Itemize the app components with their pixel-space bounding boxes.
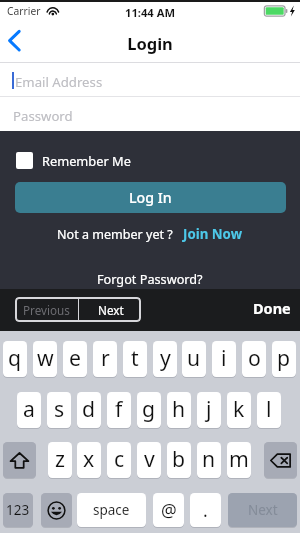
staticText: d	[82, 394, 96, 423]
button[interactable]: @	[153, 493, 184, 527]
staticText: 123	[6, 501, 30, 519]
staticText: Login	[0, 32, 300, 54]
button[interactable]: Password	[0, 97, 300, 130]
staticText: Join Now	[183, 225, 243, 243]
button[interactable]: z	[48, 442, 72, 478]
staticText: t	[131, 343, 139, 372]
staticText: e	[69, 343, 81, 372]
staticText: Not a member yet ?	[57, 226, 173, 243]
button[interactable]: e	[63, 341, 87, 377]
staticText: v	[144, 444, 155, 473]
button[interactable]: c	[107, 442, 131, 478]
button[interactable]: y	[153, 341, 177, 377]
button[interactable]: n	[197, 442, 221, 478]
staticText: o	[248, 343, 261, 372]
staticText: w	[37, 343, 54, 372]
staticText: .	[203, 498, 208, 522]
staticText: Password	[13, 107, 73, 125]
button[interactable]: f	[107, 392, 131, 428]
button[interactable]: w	[33, 341, 57, 377]
button[interactable]: Emoji	[41, 493, 72, 527]
staticText: u	[187, 343, 201, 372]
button[interactable]: k	[227, 392, 251, 428]
button[interactable]: r	[93, 341, 117, 377]
button[interactable]: Next	[80, 297, 141, 322]
button[interactable]: u	[182, 341, 206, 377]
staticText: j	[206, 394, 212, 423]
button[interactable]: g	[137, 392, 161, 428]
staticText: k	[233, 394, 245, 423]
button[interactable]: p	[272, 341, 296, 377]
button[interactable]: Done	[253, 298, 291, 318]
button[interactable]: q	[3, 341, 27, 377]
staticText: i	[221, 343, 227, 372]
button[interactable]: v	[137, 442, 161, 478]
staticText: c	[114, 444, 125, 473]
button[interactable]: Email Address	[0, 63, 300, 96]
staticText: Done	[253, 298, 291, 318]
staticText: x	[83, 444, 95, 473]
staticText: n	[202, 444, 216, 473]
staticText: h	[172, 394, 186, 423]
button[interactable]: Backspace	[264, 442, 297, 478]
staticText: 11:44 AM	[0, 5, 300, 20]
staticText: z	[55, 444, 65, 473]
staticText: f	[115, 394, 123, 423]
staticText: s	[54, 394, 65, 423]
button[interactable]: Join Now	[183, 225, 243, 243]
button[interactable]: o	[242, 341, 266, 377]
button[interactable]: d	[77, 392, 101, 428]
staticText: Remember Me	[42, 152, 131, 169]
button[interactable]: space	[77, 493, 146, 527]
button[interactable]: Remember Me	[16, 152, 131, 169]
staticText: Log In	[129, 188, 172, 207]
button[interactable]: l	[257, 392, 281, 428]
button[interactable]: b	[167, 442, 191, 478]
button[interactable]: m	[227, 442, 251, 478]
staticText: Previous	[23, 302, 70, 318]
button[interactable]: Previous	[15, 297, 78, 322]
staticText: b	[172, 444, 186, 473]
staticText: a	[23, 394, 35, 423]
button[interactable]: Forgot Password?	[0, 270, 300, 287]
staticText: m	[229, 444, 249, 473]
button[interactable]: Next	[228, 493, 297, 527]
staticText: q	[8, 343, 22, 372]
button[interactable]: x	[77, 442, 101, 478]
button[interactable]: a	[17, 392, 41, 428]
button[interactable]: Back	[1, 22, 37, 60]
button[interactable]: t	[123, 341, 147, 377]
button[interactable]: .	[190, 493, 221, 527]
button[interactable]: Log In	[15, 182, 286, 213]
staticText: @	[161, 498, 177, 522]
button[interactable]: i	[212, 341, 236, 377]
button[interactable]: Shift	[3, 442, 36, 478]
button[interactable]: 123	[3, 493, 33, 527]
staticText: Forgot Password?	[97, 270, 203, 287]
button[interactable]: h	[167, 392, 191, 428]
button[interactable]: s	[47, 392, 71, 428]
staticText: r	[101, 343, 110, 372]
staticText: l	[266, 394, 272, 423]
staticText: g	[142, 394, 156, 423]
staticText: Carrier	[7, 4, 41, 18]
staticText: Next	[98, 302, 124, 318]
staticText: Next	[248, 501, 278, 519]
button[interactable]: j	[197, 392, 221, 428]
staticText: Email Address	[15, 73, 103, 91]
staticText: y	[160, 343, 171, 372]
staticText: p	[277, 343, 291, 372]
staticText: space	[93, 501, 130, 519]
